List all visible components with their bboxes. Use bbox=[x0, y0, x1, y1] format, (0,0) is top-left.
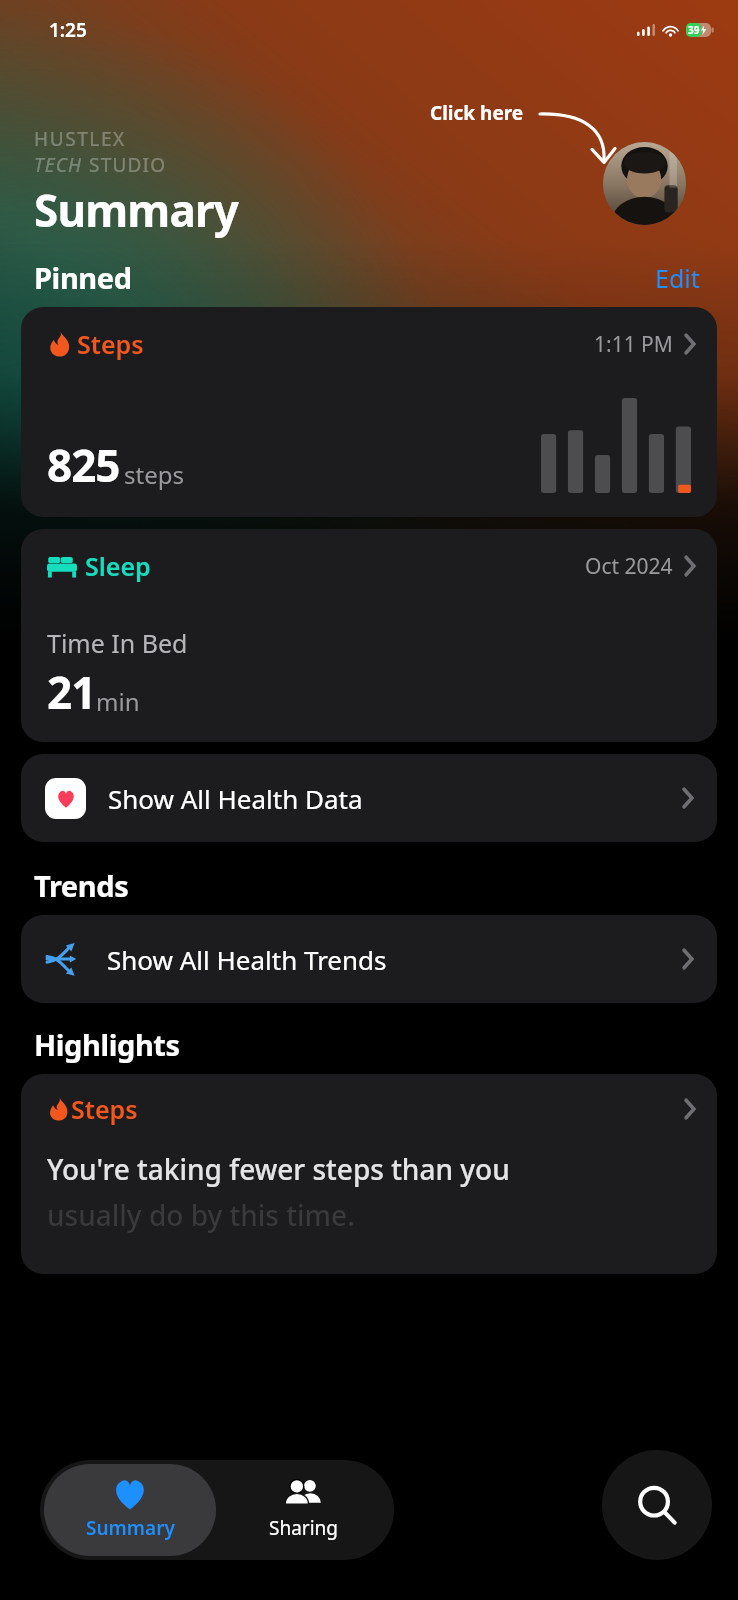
button[interactable]: Steps bbox=[21, 307, 717, 517]
staticText: steps bbox=[124, 458, 184, 491]
staticText: Time In Bed bbox=[47, 626, 188, 660]
staticText: Trends bbox=[34, 866, 129, 905]
staticText: usually do by this time. bbox=[47, 1196, 355, 1234]
staticText: Highlights bbox=[34, 1025, 180, 1064]
staticText: Sleep bbox=[85, 549, 151, 583]
staticText: Sharing bbox=[269, 1515, 339, 1541]
staticText: Oct 2024 bbox=[585, 552, 673, 581]
staticText: 825 bbox=[47, 435, 120, 495]
staticText: Summary bbox=[34, 180, 239, 240]
staticText: min bbox=[96, 685, 140, 718]
staticText: Click here bbox=[430, 100, 524, 126]
staticText: STUDIO bbox=[89, 152, 167, 178]
button[interactable]: Edit bbox=[651, 259, 704, 297]
button[interactable]: Sharing bbox=[220, 1464, 388, 1556]
button[interactable]: Summary bbox=[44, 1464, 216, 1556]
staticText: 39 bbox=[688, 23, 700, 37]
staticText: TECH bbox=[34, 152, 89, 178]
staticText: Steps bbox=[71, 1092, 138, 1126]
button[interactable]: Profile bbox=[603, 142, 686, 225]
staticText: Show All Health Data bbox=[108, 781, 363, 816]
button[interactable]: Show All Health Trends bbox=[21, 915, 717, 1003]
button[interactable]: Steps bbox=[21, 1074, 717, 1274]
staticText: Edit bbox=[655, 261, 700, 295]
staticText: HUSTLEX bbox=[34, 126, 126, 152]
staticText: 1:11 PM bbox=[594, 330, 673, 359]
staticText: Pinned bbox=[34, 258, 132, 297]
staticText: You're taking fewer steps than you bbox=[47, 1150, 510, 1188]
staticText: 1:25 bbox=[49, 17, 87, 43]
staticText: 21 bbox=[47, 662, 96, 722]
staticText: Show All Health Trends bbox=[107, 942, 387, 977]
button[interactable]: Search bbox=[602, 1450, 712, 1560]
staticText: Summary bbox=[86, 1515, 175, 1541]
staticText: Steps bbox=[77, 327, 144, 361]
button[interactable]: Show All Health Data bbox=[21, 754, 717, 842]
button[interactable]: Sleep bbox=[21, 529, 717, 742]
